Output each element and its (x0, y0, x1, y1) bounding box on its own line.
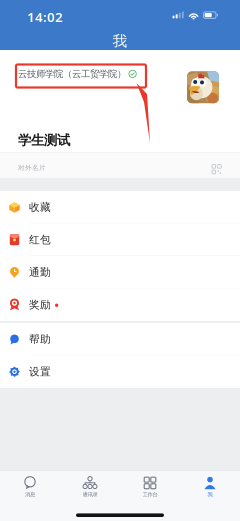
button[interactable]: 对外名片 (0, 153, 240, 178)
button[interactable]: 通勤 (0, 256, 240, 288)
button[interactable]: 工作台 (120, 471, 180, 511)
staticText: 通勤 (29, 266, 51, 279)
staticText: 通讯录 (82, 491, 97, 498)
button[interactable]: 红包 (0, 223, 240, 256)
staticText: 工作台 (142, 491, 157, 498)
button[interactable]: 设置 (0, 355, 240, 388)
button[interactable]: 消息 (0, 471, 60, 511)
button[interactable]: 通讯录 (60, 471, 120, 511)
staticText: 我 (112, 32, 127, 50)
staticText: 对外名片 (18, 164, 46, 172)
staticText: 我 (207, 491, 212, 498)
staticText: 设置 (29, 365, 51, 378)
button[interactable]: 我 (180, 471, 240, 511)
staticText: 红包 (29, 233, 51, 246)
button[interactable]: 帮助 (0, 323, 240, 355)
staticText: 帮助 (29, 333, 51, 346)
staticText: 学生测试 (18, 132, 70, 149)
staticText: 消息 (25, 491, 35, 498)
staticText: 收藏 (29, 201, 51, 214)
staticText: 云技师学院（云工贸学院） (18, 68, 126, 80)
staticText: 14:02 (27, 8, 63, 26)
button[interactable]: 奖励 (0, 288, 240, 321)
button[interactable]: 收藏 (0, 191, 240, 223)
staticText: 奖励 (29, 298, 51, 311)
